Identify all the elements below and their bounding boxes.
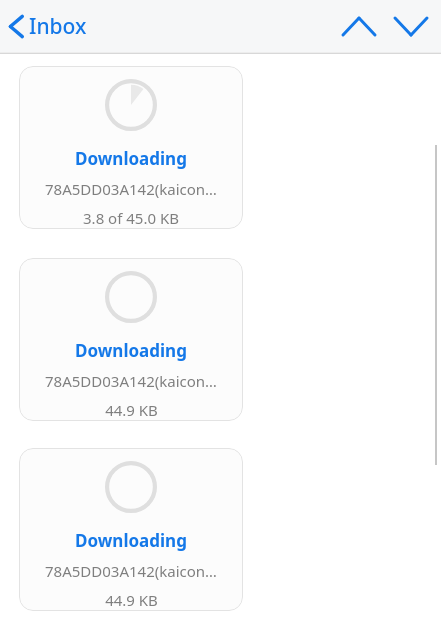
button[interactable]: Downloading <box>19 66 243 229</box>
staticText: 78A5DD03A142(kaicon… <box>45 179 217 199</box>
staticText: 78A5DD03A142(kaicon… <box>45 371 217 391</box>
staticText: 44.9 KB <box>105 590 158 610</box>
button[interactable]: Downloading <box>19 258 243 421</box>
button[interactable]: Next message <box>385 8 441 45</box>
button[interactable]: Previous message <box>333 8 385 45</box>
staticText: Downloading <box>75 529 187 552</box>
staticText: Inbox <box>29 12 87 41</box>
staticText: 44.9 KB <box>105 400 158 420</box>
staticText: Downloading <box>75 339 187 362</box>
button[interactable]: Inbox <box>0 6 97 47</box>
button[interactable]: Downloading <box>19 448 243 611</box>
staticText: 78A5DD03A142(kaicon… <box>45 561 217 581</box>
staticText: Downloading <box>75 147 187 170</box>
staticText: 3.8 of 45.0 KB <box>83 208 179 228</box>
